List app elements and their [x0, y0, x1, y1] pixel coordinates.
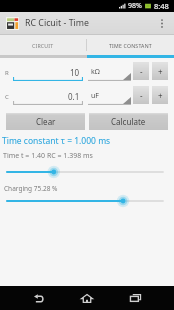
staticText: R	[5, 69, 9, 77]
staticText: 10	[70, 67, 80, 78]
button[interactable]: Increase	[152, 86, 168, 104]
staticText: Time constant τ = 1.000 ms	[2, 135, 111, 147]
staticText: C	[5, 93, 9, 101]
staticText: RC Cicuit - Time	[25, 17, 90, 29]
staticText: +	[158, 90, 163, 101]
staticText: Clear	[36, 116, 56, 127]
button[interactable]: Back	[14, 286, 62, 310]
button[interactable]: TIME CONSTANT	[87, 35, 174, 55]
staticText: kΩ	[91, 67, 100, 77]
staticText: Calculate	[111, 116, 146, 127]
staticText: 0.1	[68, 91, 80, 102]
button[interactable]: Calculate	[89, 113, 168, 130]
button[interactable]: kΩ	[88, 63, 131, 81]
staticText: uF	[91, 91, 99, 101]
button[interactable]: 10	[13, 63, 83, 81]
staticText: +	[158, 66, 163, 77]
button[interactable]: Clear	[6, 113, 85, 130]
button[interactable]: uF	[88, 87, 131, 105]
button[interactable]	[0, 165, 174, 179]
button[interactable]: Recents	[111, 286, 160, 310]
staticText: -	[140, 90, 143, 101]
staticText: Charging 75.28 %	[4, 184, 58, 193]
button[interactable]: 0.1	[13, 87, 83, 105]
button[interactable]: Home	[62, 286, 111, 310]
staticText: -	[140, 66, 143, 77]
button[interactable]: Decrease	[133, 86, 149, 104]
staticText: TIME CONSTANT	[109, 42, 152, 49]
staticText: 8:48	[154, 1, 169, 11]
button[interactable]: Decrease	[133, 62, 149, 80]
staticText: 98%	[128, 1, 142, 11]
button[interactable]: CIRCUIT	[0, 35, 86, 55]
staticText: CIRCUIT	[32, 42, 54, 49]
button[interactable]	[0, 194, 174, 208]
staticText: Time t = 1.40 RC = 1.398 ms	[3, 151, 93, 161]
button[interactable]: Increase	[152, 62, 168, 80]
button[interactable]: More options	[154, 12, 170, 34]
